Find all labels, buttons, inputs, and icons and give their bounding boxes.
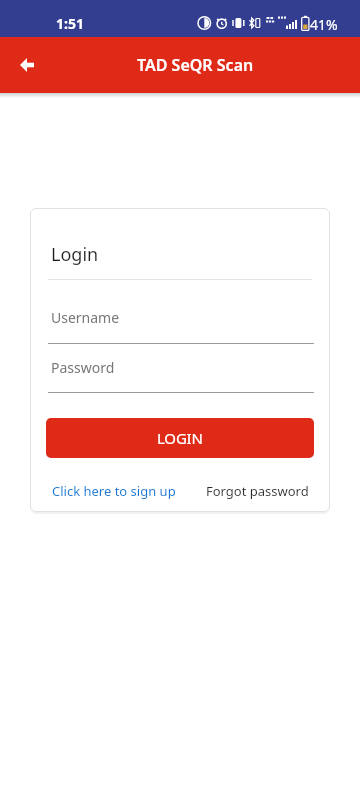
button[interactable]: Click here to sign up <box>52 482 176 500</box>
staticText: Password <box>51 358 115 377</box>
staticText: 1:51 <box>56 14 84 33</box>
staticText: Login <box>51 242 99 267</box>
staticText: TAD SeQR Scan <box>137 54 254 76</box>
staticText: 41% <box>310 15 338 34</box>
button[interactable]: Password <box>48 350 314 393</box>
button[interactable] <box>13 51 41 79</box>
button[interactable]: LOGIN <box>46 418 314 458</box>
staticText: Username <box>51 308 120 327</box>
button[interactable]: Username <box>48 300 314 344</box>
staticText: LOGIN <box>157 428 203 448</box>
button[interactable]: Forgot password <box>206 482 309 500</box>
